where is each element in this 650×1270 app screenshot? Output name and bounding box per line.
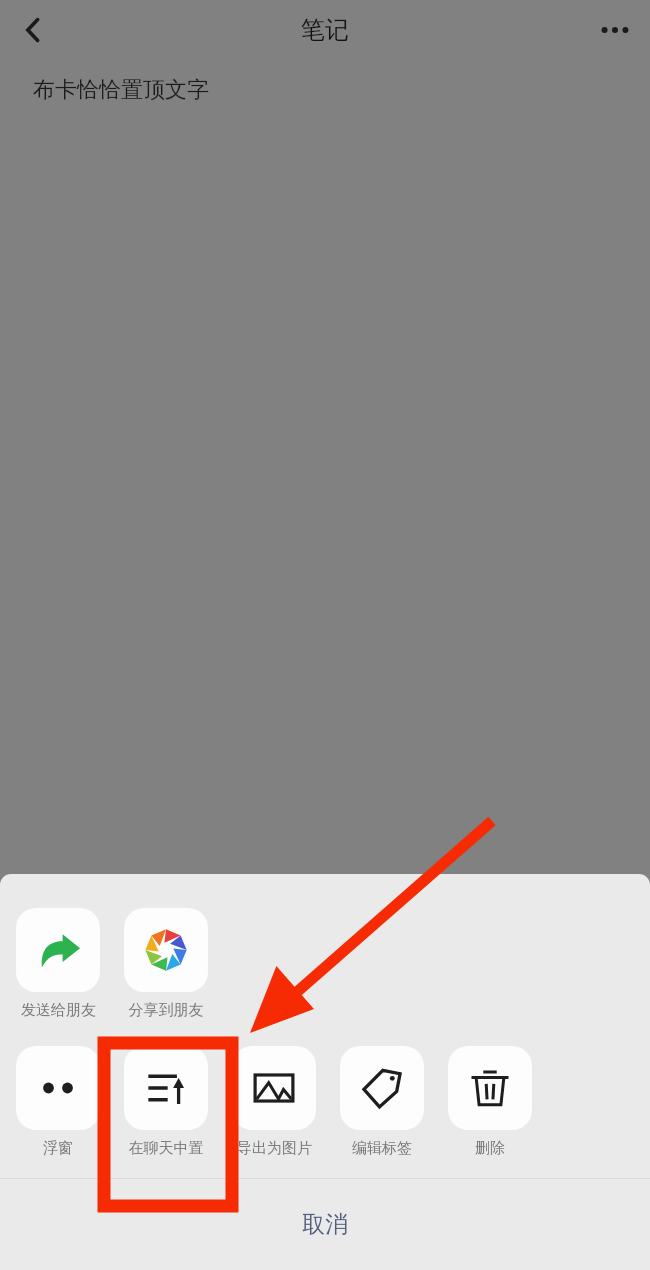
button[interactable]: Back bbox=[6, 3, 60, 57]
staticText: 发送给朋友 bbox=[21, 1001, 96, 1020]
staticText: 编辑标签 bbox=[352, 1139, 412, 1158]
staticText: 在聊天中置顶 bbox=[124, 1139, 208, 1158]
staticText: 取消 bbox=[302, 1210, 348, 1239]
staticText: 笔记 bbox=[301, 15, 349, 45]
button[interactable]: 导出为图片 bbox=[232, 1046, 316, 1158]
button[interactable]: 发送给朋友 bbox=[16, 908, 100, 1020]
button[interactable]: 在聊天中置顶 bbox=[124, 1046, 208, 1158]
button[interactable]: 编辑标签 bbox=[340, 1046, 424, 1158]
button[interactable]: More options bbox=[588, 3, 642, 57]
staticText: 分享到朋友圈 bbox=[124, 1001, 208, 1020]
staticText: 浮窗 bbox=[43, 1139, 73, 1158]
staticText: 导出为图片 bbox=[237, 1139, 312, 1158]
button[interactable]: 取消 bbox=[0, 1179, 650, 1270]
button[interactable]: 浮窗 bbox=[16, 1046, 100, 1158]
staticText: 布卡恰恰置顶文字 bbox=[33, 76, 209, 104]
button[interactable]: 分享到朋友圈 bbox=[124, 908, 208, 1020]
staticText: 删除 bbox=[475, 1139, 505, 1158]
button[interactable]: 删除 bbox=[448, 1046, 532, 1158]
